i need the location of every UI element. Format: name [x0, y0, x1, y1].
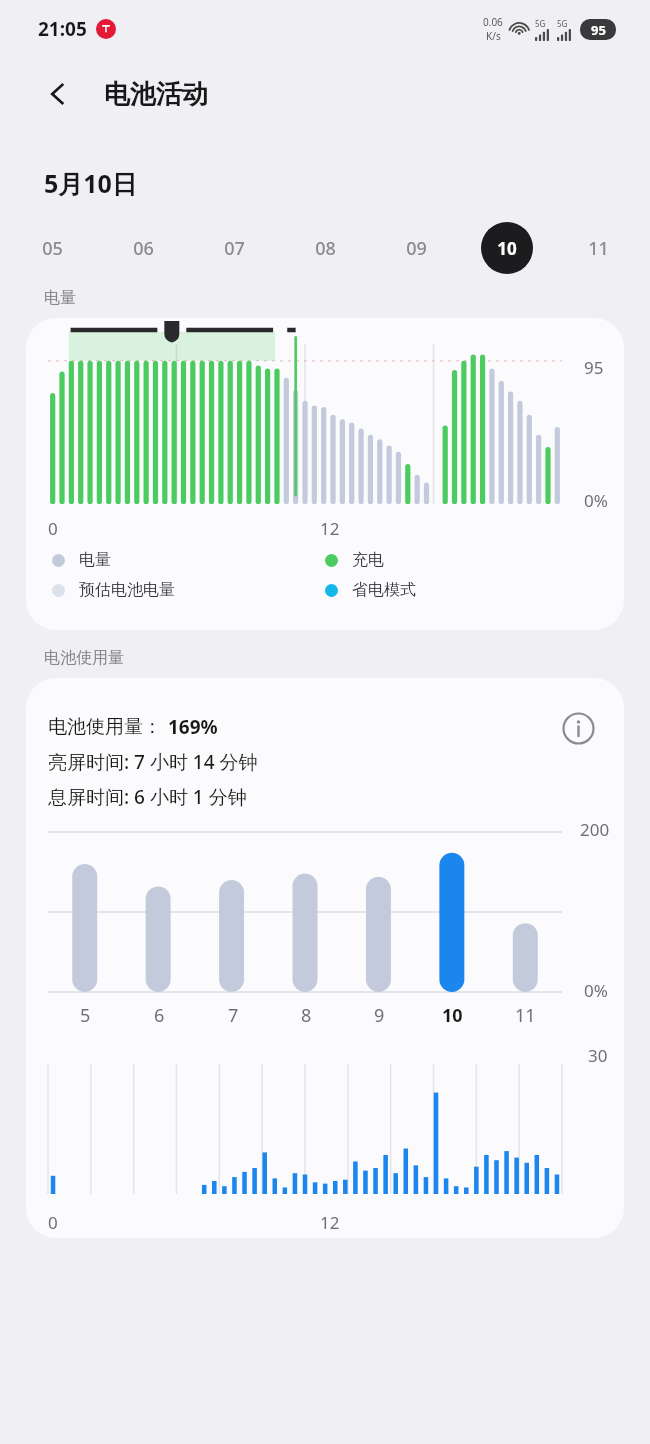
staticText: 5月10日 [44, 166, 137, 200]
staticText: 12 [320, 1211, 340, 1234]
staticText: 0 [48, 517, 58, 540]
button[interactable]: 电池使用量： [26, 678, 624, 1238]
staticText: 12 [320, 517, 340, 540]
staticText: 21:05 [38, 16, 87, 42]
staticText: 11 [515, 1003, 536, 1028]
staticText: 息屏时间: 6 小时 1 分钟 [48, 784, 247, 810]
staticText: 169% [168, 714, 218, 740]
staticText: 95 [591, 21, 606, 39]
button[interactable]: 06 [117, 222, 169, 274]
staticText: 电量 [79, 550, 111, 570]
staticText: 5 [80, 1003, 91, 1028]
staticText: 7 [228, 1003, 239, 1028]
staticText: 06 [133, 236, 154, 261]
staticText: 07 [224, 236, 245, 261]
button[interactable]: 07 [208, 222, 260, 274]
staticText: 亮屏时间: 7 小时 14 分钟 [48, 749, 258, 775]
staticText: 11 [588, 236, 609, 261]
staticText: 95 [584, 356, 604, 379]
staticText: 9 [374, 1003, 385, 1028]
staticText: 电量 [44, 288, 76, 308]
button[interactable]: Info [554, 704, 602, 752]
button[interactable]: 10 [481, 222, 533, 274]
staticText: 充电 [352, 550, 384, 570]
staticText: 200 [580, 818, 610, 841]
staticText: 6 [154, 1003, 165, 1028]
button[interactable]: 11 [572, 222, 624, 274]
staticText: 0.06 [483, 15, 503, 29]
button[interactable]: 08 [299, 222, 351, 274]
staticText: K/s [486, 29, 501, 43]
staticText: 电池使用量 [44, 648, 124, 668]
staticText: 0 [48, 1211, 58, 1234]
staticText: 10 [497, 237, 517, 260]
button[interactable]: Back [34, 70, 82, 118]
staticText: 05 [42, 236, 63, 261]
button[interactable]: 05 [26, 222, 78, 274]
button[interactable]: 95 [26, 318, 624, 630]
staticText: 电池活动 [104, 78, 208, 111]
staticText: 30 [588, 1044, 608, 1067]
staticText: 0% [584, 489, 608, 512]
staticText: 10 [442, 1003, 463, 1028]
staticText: 5G [557, 18, 568, 29]
button[interactable]: 09 [390, 222, 442, 274]
staticText: 5G [535, 18, 546, 29]
staticText: 省电模式 [352, 580, 416, 600]
staticText: 0% [584, 979, 608, 1002]
staticText: 09 [406, 236, 427, 261]
staticText: 8 [301, 1003, 312, 1028]
staticText: 08 [315, 236, 336, 261]
staticText: 电池使用量： [48, 715, 162, 739]
staticText: 预估电池电量 [79, 580, 175, 600]
